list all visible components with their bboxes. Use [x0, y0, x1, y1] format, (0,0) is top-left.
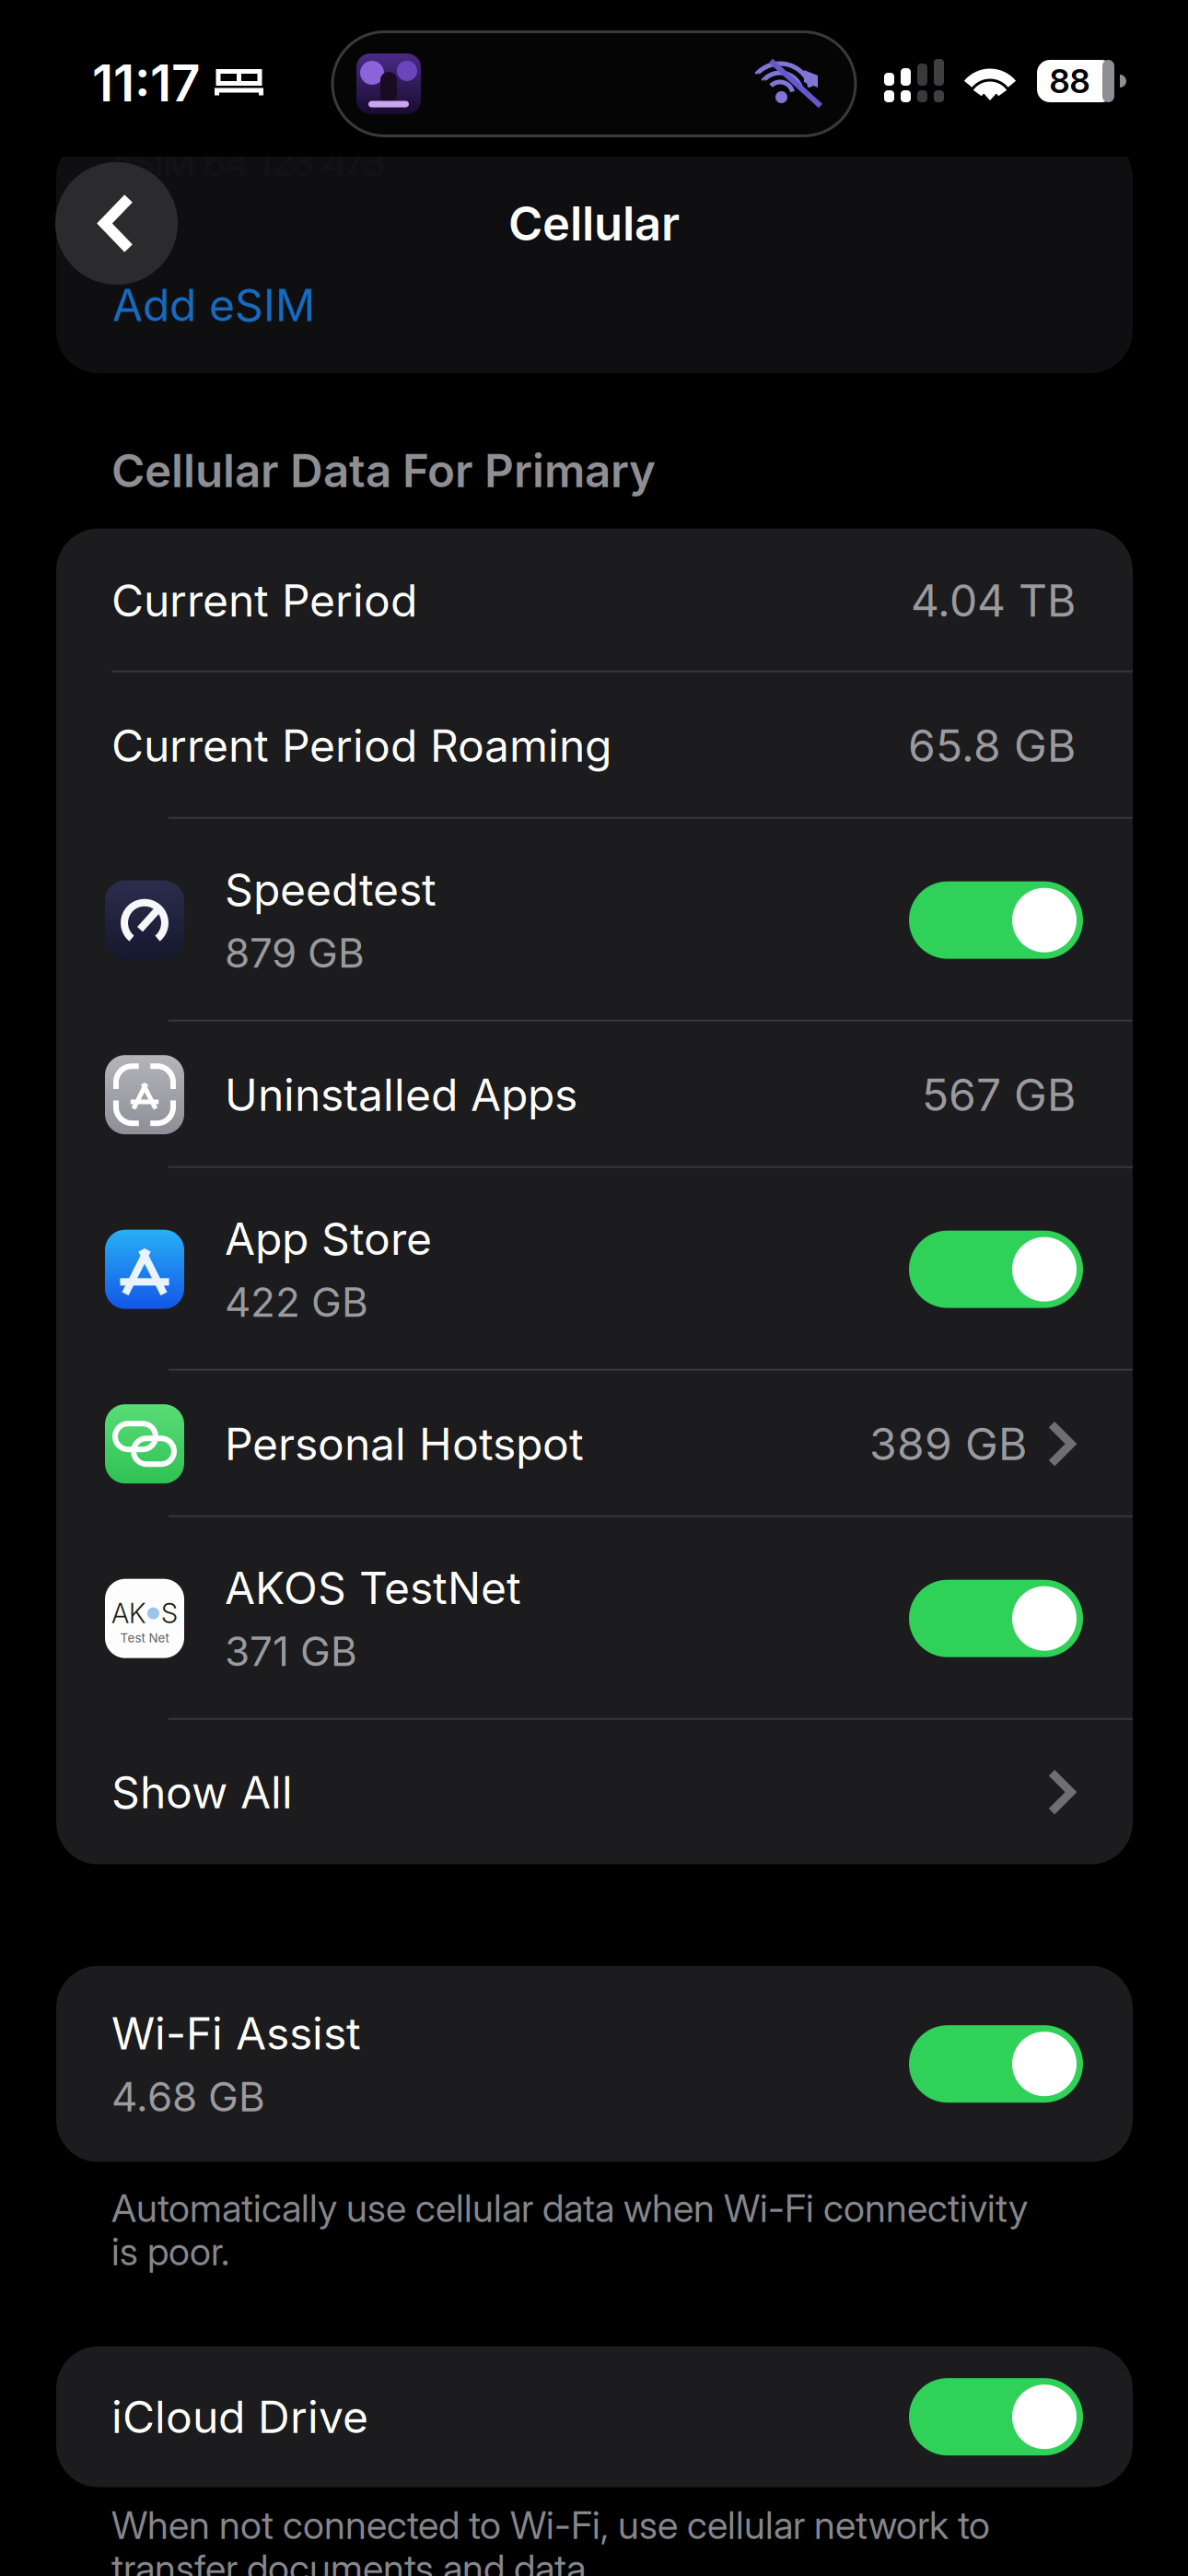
staticText: Personal Hotspot: [225, 1417, 584, 1471]
staticText: S: [161, 1597, 178, 1630]
staticText: iCloud Drive: [111, 2390, 368, 2444]
staticText: Current Period Roaming: [111, 719, 611, 772]
staticText: When not connected to Wi-Fi, use cellula…: [111, 2502, 990, 2548]
staticText: Cellular Data For Primary: [111, 443, 656, 498]
staticText: 567 GB: [922, 1068, 1076, 1122]
staticText: 389 GB: [869, 1417, 1027, 1471]
button[interactable]: AK: [56, 1517, 1133, 1720]
staticText: Speedtest: [225, 863, 437, 916]
button[interactable]: Uninstalled Apps: [56, 1021, 1133, 1168]
staticText: App Store: [225, 1212, 432, 1266]
staticText: 879 GB: [225, 928, 365, 977]
staticText: Test Net: [120, 1631, 169, 1645]
staticText: is poor.: [111, 2228, 229, 2274]
button[interactable]: Current Period: [56, 529, 1133, 672]
staticText: Add eSIM: [112, 278, 315, 332]
button[interactable]: Back: [55, 162, 178, 285]
staticText: transfer documents and data.: [111, 2545, 594, 2576]
staticText: 422 GB: [225, 1277, 368, 1327]
button[interactable]: Current Period Roaming: [56, 672, 1133, 819]
staticText: Current Period: [111, 574, 417, 627]
staticText: AK: [111, 1597, 146, 1630]
staticText: AKOS TestNet: [225, 1561, 521, 1615]
staticText: 371 GB: [225, 1627, 357, 1676]
staticText: 4.68 GB: [111, 2072, 265, 2121]
button[interactable]: iCloud Drive: [56, 2346, 1133, 2487]
button[interactable]: Show All: [56, 1720, 1133, 1864]
button[interactable]: Personal Hotspot: [56, 1371, 1133, 1517]
staticText: 88: [1049, 61, 1090, 101]
staticText: Uninstalled Apps: [225, 1068, 577, 1122]
button[interactable]: Speedtest: [56, 819, 1133, 1021]
staticText: Wi-Fi Assist: [111, 2007, 361, 2060]
staticText: 11:17: [92, 52, 200, 113]
staticText: eSIM 64 128 473: [111, 140, 385, 185]
staticText: Automatically use cellular data when Wi-…: [111, 2185, 1028, 2231]
staticText: Cellular: [508, 195, 680, 252]
button[interactable]: Wi-Fi Assist: [56, 1966, 1133, 2162]
staticText: 4.04 TB: [911, 574, 1076, 627]
button[interactable]: App Store: [56, 1168, 1133, 1371]
staticText: Show All: [111, 1765, 293, 1819]
staticText: 65.8 GB: [908, 719, 1076, 772]
staticText: Secondary: [111, 101, 331, 152]
